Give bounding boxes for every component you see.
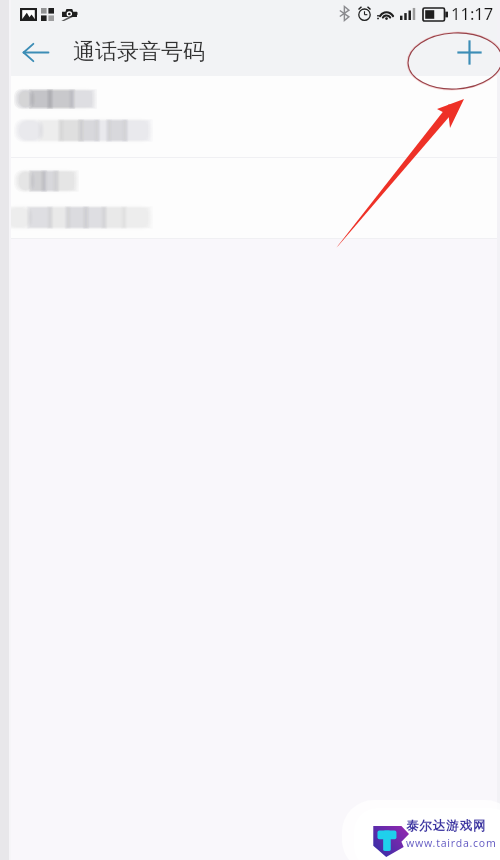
button[interactable]	[0, 76, 500, 157]
button[interactable]	[0, 158, 500, 238]
staticText: 11:17	[451, 2, 494, 24]
staticText: www.tairda.com	[406, 836, 497, 850]
button[interactable]: Add	[451, 34, 487, 70]
button[interactable]: Back	[17, 34, 53, 70]
staticText: 泰尔达游戏网	[406, 818, 487, 834]
staticText: 通话录音号码	[73, 38, 205, 66]
